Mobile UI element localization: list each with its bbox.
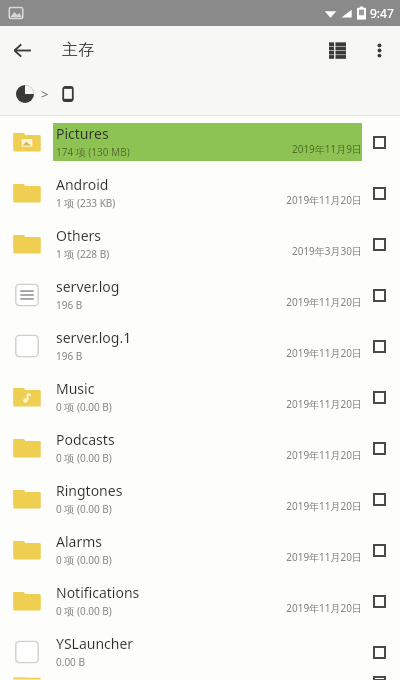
button[interactable]: Select YSLauncher xyxy=(364,637,394,667)
button[interactable]: Select Alarms xyxy=(364,535,394,565)
button[interactable]: Music xyxy=(0,371,400,422)
button[interactable]: Select Podcasts xyxy=(364,433,394,463)
staticText: 主存 xyxy=(62,40,94,60)
staticText: Others xyxy=(56,226,102,245)
button[interactable]: Others xyxy=(0,218,400,269)
staticText: 2019年11月9日 xyxy=(258,142,362,156)
button[interactable]: Android xyxy=(0,167,400,218)
staticText: Ringtones xyxy=(56,481,123,500)
button[interactable]: YSLauncher xyxy=(0,626,400,677)
staticText: 2019年11月20日 xyxy=(258,601,362,615)
button[interactable]: Alarms xyxy=(0,524,400,575)
button[interactable]: Select Android xyxy=(364,178,394,208)
staticText: Alarms xyxy=(56,532,102,551)
button[interactable]: Ringtones xyxy=(0,473,400,524)
staticText: 2019年11月20日 xyxy=(258,397,362,411)
staticText: 0.00 B xyxy=(56,655,85,669)
button[interactable]: Select Ringtones xyxy=(364,484,394,514)
button[interactable]: Back xyxy=(0,28,44,72)
button[interactable]: Select Music xyxy=(364,382,394,412)
button[interactable]: View mode xyxy=(316,29,358,71)
staticText: 9:47 xyxy=(370,5,394,21)
staticText: 2019年11月20日 xyxy=(258,193,362,207)
button[interactable]: Select Movies xyxy=(364,677,394,680)
button[interactable]: Select server.log xyxy=(364,280,394,310)
button[interactable]: Movies xyxy=(0,677,400,680)
staticText: 0 项 (0.00 B) xyxy=(56,502,112,516)
button[interactable]: Select Others xyxy=(364,229,394,259)
button[interactable]: Internal storage xyxy=(55,81,81,107)
button[interactable]: server.log xyxy=(0,269,400,320)
button[interactable]: Podcasts xyxy=(0,422,400,473)
staticText: 0 项 (0.00 B) xyxy=(56,553,112,567)
staticText: 2019年11月20日 xyxy=(258,346,362,360)
staticText: 174 项 (130 MB) xyxy=(56,145,130,159)
staticText: 2019年11月20日 xyxy=(258,499,362,513)
button[interactable]: Select Pictures xyxy=(364,127,394,157)
staticText: Pictures xyxy=(56,124,109,143)
staticText: 0 项 (0.00 B) xyxy=(56,604,112,618)
button[interactable]: Storage root xyxy=(12,81,38,107)
staticText: 2019年11月20日 xyxy=(258,550,362,564)
staticText: 2019年11月20日 xyxy=(258,295,362,309)
staticText: 196 B xyxy=(56,298,83,312)
staticText: Podcasts xyxy=(56,430,115,449)
staticText: 196 B xyxy=(56,349,83,363)
staticText: server.log xyxy=(56,277,120,296)
staticText: server.log.1 xyxy=(56,328,132,347)
staticText: 2019年3月30日 xyxy=(258,244,362,258)
button[interactable]: Select Notifications xyxy=(364,586,394,616)
staticText: > xyxy=(41,85,49,103)
staticText: 1 项 (228 B) xyxy=(56,247,110,261)
staticText: 0 项 (0.00 B) xyxy=(56,400,112,414)
button[interactable]: Pictures xyxy=(0,116,400,167)
button[interactable]: Select server.log.1 xyxy=(364,331,394,361)
staticText: 1 项 (233 KB) xyxy=(56,196,116,210)
staticText: 0 项 (0.00 B) xyxy=(56,451,112,465)
staticText: Android xyxy=(56,175,109,194)
staticText: Music xyxy=(56,379,95,398)
staticText: Notifications xyxy=(56,583,140,602)
button[interactable]: server.log.1 xyxy=(0,320,400,371)
button[interactable]: Notifications xyxy=(0,575,400,626)
staticText: YSLauncher xyxy=(56,634,134,653)
button[interactable]: More options xyxy=(358,29,400,71)
staticText: 2019年11月20日 xyxy=(258,448,362,462)
